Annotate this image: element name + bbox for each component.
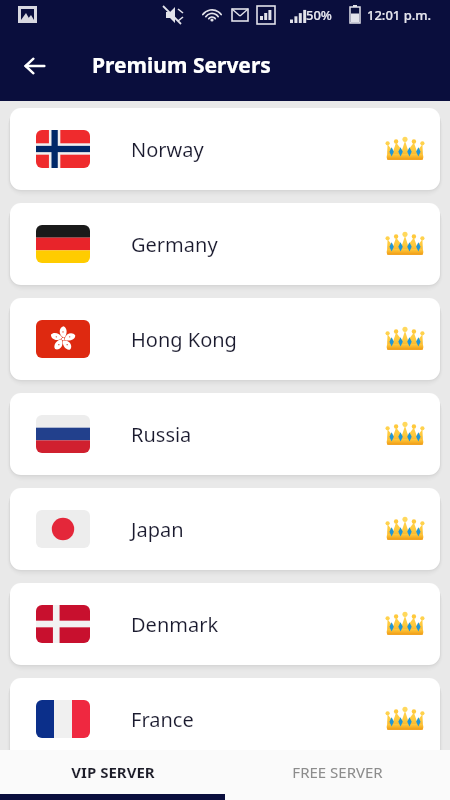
button[interactable]: Japan: [10, 488, 440, 570]
button[interactable]: France: [10, 678, 440, 760]
button[interactable]: VIP SERVER: [0, 750, 225, 794]
button[interactable]: Germany: [10, 203, 440, 285]
staticText: France: [131, 706, 194, 733]
staticText: Norway: [131, 136, 204, 163]
staticText: Russia: [131, 421, 192, 448]
staticText: Hong Kong: [131, 326, 237, 353]
staticText: 12:01 p.m.: [367, 6, 432, 24]
staticText: Japan: [131, 516, 184, 543]
button[interactable]: Russia: [10, 393, 440, 475]
staticText: Germany: [131, 231, 218, 258]
button[interactable]: Denmark: [10, 583, 440, 665]
staticText: VIP SERVER: [71, 762, 155, 782]
staticText: Denmark: [131, 611, 219, 638]
button[interactable]: Norway: [10, 108, 440, 190]
button[interactable]: FREE SERVER: [225, 750, 450, 794]
button[interactable]: Hong Kong: [10, 298, 440, 380]
staticText: FREE SERVER: [292, 762, 383, 782]
staticText: 50%: [306, 6, 332, 24]
staticText: Premium Servers: [92, 51, 271, 80]
button[interactable]: Back: [12, 43, 58, 89]
